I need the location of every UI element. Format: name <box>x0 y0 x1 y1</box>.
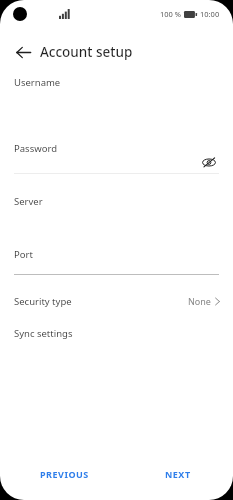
button[interactable]: Show password <box>198 151 220 173</box>
button[interactable]: Password <box>0 135 233 161</box>
staticText: NEXT <box>165 468 191 480</box>
staticText: 100 % <box>160 9 182 19</box>
staticText: Account setup <box>40 43 133 61</box>
button[interactable]: PREVIOUS <box>26 462 102 486</box>
staticText: PREVIOUS <box>40 468 89 480</box>
staticText: None <box>188 295 211 307</box>
staticText: Password <box>14 142 57 155</box>
staticText: Port <box>14 248 33 261</box>
button[interactable]: NEXT <box>150 462 206 486</box>
button[interactable]: Sync settings <box>0 321 233 345</box>
staticText: Server <box>14 195 43 208</box>
staticText: Security type <box>14 295 72 308</box>
staticText: Sync settings <box>14 327 73 340</box>
staticText: Username <box>14 76 61 89</box>
button[interactable]: Security type <box>0 288 233 314</box>
button[interactable]: Username <box>0 69 233 95</box>
button[interactable]: Back <box>10 39 36 65</box>
button[interactable]: Port <box>0 241 233 267</box>
staticText: 10:00 <box>200 9 220 19</box>
button[interactable]: Server <box>0 188 233 214</box>
